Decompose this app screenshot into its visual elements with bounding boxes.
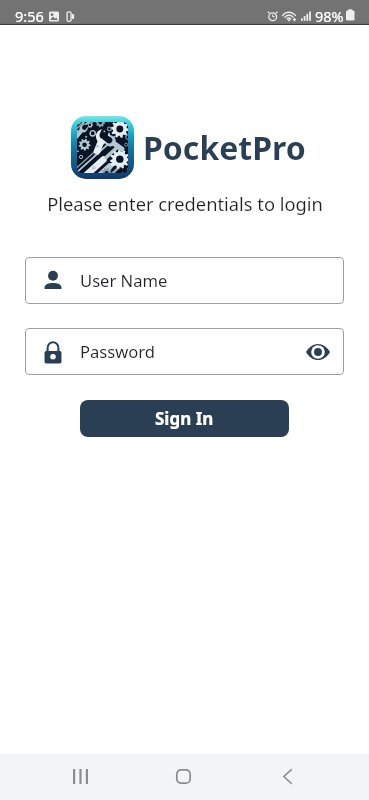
button[interactable]: Recent apps	[48, 754, 112, 800]
staticText: Sign In	[155, 407, 214, 430]
staticText: 98%	[315, 6, 344, 25]
staticText: PocketPro	[143, 126, 306, 170]
button[interactable]: Home	[151, 754, 215, 800]
button[interactable]: User Name	[25, 257, 344, 304]
button[interactable]: Back	[255, 754, 319, 800]
staticText: Password	[80, 340, 156, 363]
button[interactable]: Password	[25, 328, 344, 375]
staticText: User Name	[80, 269, 168, 292]
staticText: Please enter credentials to login	[47, 191, 323, 216]
button[interactable]: Sign In	[80, 400, 289, 437]
staticText: 9:56	[15, 6, 44, 25]
button[interactable]: Show password	[305, 336, 330, 368]
